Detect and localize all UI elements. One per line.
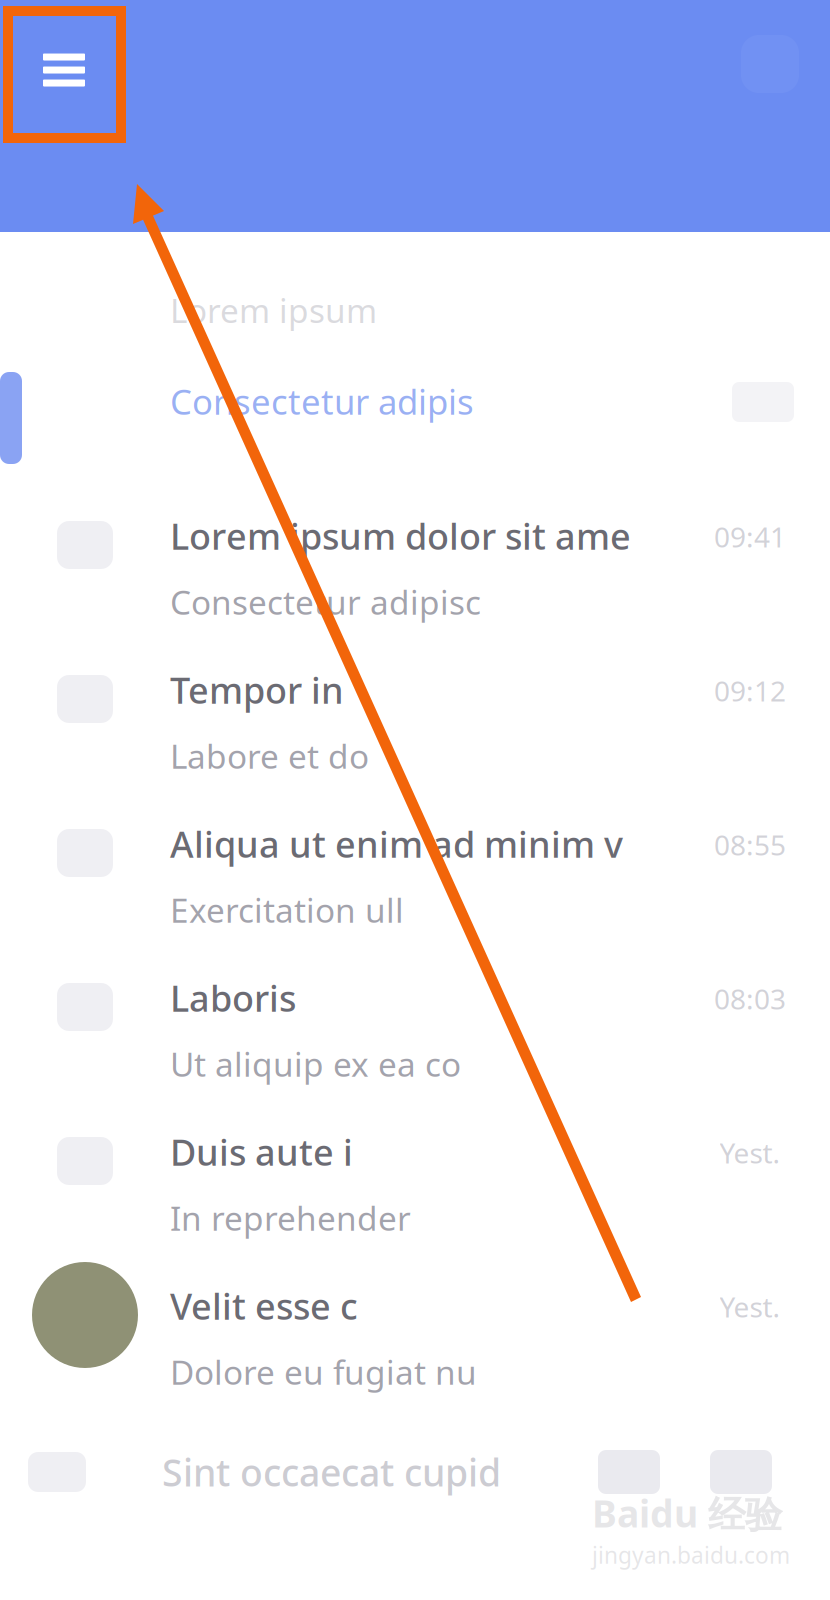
- staticText: Consectetur adipis: [170, 378, 474, 424]
- staticText: Exercitation ull: [170, 888, 404, 932]
- staticText: Consectetur adipisc: [170, 580, 481, 624]
- staticText: Lorem ipsum: [170, 288, 377, 332]
- button[interactable]: Aliqua ut enim ad minim v: [0, 792, 830, 946]
- staticText: Aliqua ut enim ad minim v: [170, 820, 623, 868]
- button[interactable]: Laboris: [0, 946, 830, 1100]
- staticText: Duis aute i: [170, 1128, 353, 1176]
- staticText: Laboris: [170, 974, 296, 1022]
- staticText: Tempor in: [170, 666, 344, 714]
- staticText: Ut aliquip ex ea co: [170, 1042, 461, 1086]
- staticText: Labore et do: [170, 734, 369, 778]
- button[interactable]: Velit esse c: [0, 1254, 830, 1408]
- button[interactable]: Lorem ipsum dolor sit ame: [0, 484, 830, 638]
- button[interactable]: Tempor in: [0, 638, 830, 792]
- button[interactable]: Sint occaecat cupid: [0, 1408, 830, 1536]
- staticText: Baidu 经验: [592, 1488, 782, 1538]
- staticText: 09:41: [714, 518, 786, 555]
- staticText: 09:12: [714, 672, 786, 709]
- staticText: Lorem ipsum dolor sit ame: [170, 512, 631, 560]
- staticText: In reprehender: [170, 1196, 411, 1240]
- staticText: Velit esse c: [170, 1282, 358, 1330]
- staticText: 08:03: [714, 980, 786, 1017]
- button[interactable]: Duis aute i: [0, 1100, 830, 1254]
- staticText: Yest.: [719, 1134, 780, 1171]
- button[interactable]: Menu: [0, 0, 128, 140]
- staticText: 08:55: [714, 826, 786, 863]
- staticText: Sint occaecat cupid: [162, 1447, 501, 1497]
- staticText: jingyan.baidu.com: [592, 1540, 790, 1570]
- staticText: Yest.: [719, 1288, 780, 1325]
- staticText: Dolore eu fugiat nu: [170, 1350, 477, 1394]
